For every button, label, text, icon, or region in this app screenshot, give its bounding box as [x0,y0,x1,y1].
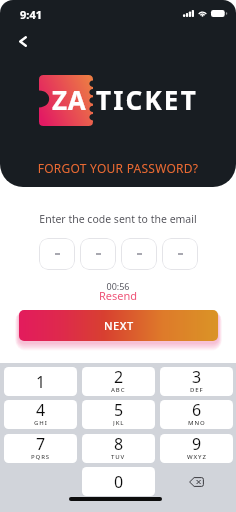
staticText: 5 [114,400,124,421]
staticText: 1 [36,371,46,393]
staticText: TUV [111,453,126,460]
button[interactable]: 2 [82,367,155,396]
button[interactable]: 1 [4,367,77,396]
staticText: TICKET [96,82,198,117]
staticText: 7 [36,434,46,455]
button[interactable]: 5 [82,400,155,429]
button[interactable]: Resend [99,288,138,303]
button[interactable] [39,238,75,270]
staticText: JKL [113,419,125,426]
staticText: 0 [114,471,124,493]
staticText: DEF [190,386,204,393]
button[interactable]: 4 [4,400,77,429]
button[interactable]: NEXT [19,310,218,341]
button[interactable]: 9 [160,434,233,463]
button[interactable]: 3 [160,367,233,396]
button[interactable]: Back [11,29,35,53]
staticText: ABC [111,386,126,393]
button[interactable] [80,238,116,270]
staticText: GHI [34,419,48,426]
staticText: 00:56 [0,280,236,292]
staticText: 4 [36,400,46,421]
staticText: 2 [114,367,124,388]
staticText: WXYZ [187,453,207,460]
staticText: 6 [192,400,202,421]
button[interactable]: 7 [4,434,77,463]
staticText: ZA [52,82,87,117]
staticText: Enter the code sent to the email [0,212,236,226]
button[interactable]: 0 [82,467,155,496]
button[interactable]: 8 [82,434,155,463]
staticText: MNO [188,419,206,426]
staticText: NEXT [104,318,134,333]
button[interactable]: Backspace [160,467,233,496]
staticText: PQRS [31,453,51,460]
staticText: 8 [114,434,124,455]
button[interactable] [121,238,157,270]
staticText: 9 [192,434,202,455]
button[interactable] [162,238,198,270]
staticText: 9:41 [20,7,42,22]
button[interactable]: 6 [160,400,233,429]
staticText: 3 [192,367,202,388]
staticText: FORGOT YOUR PASSWORD? [0,160,236,176]
